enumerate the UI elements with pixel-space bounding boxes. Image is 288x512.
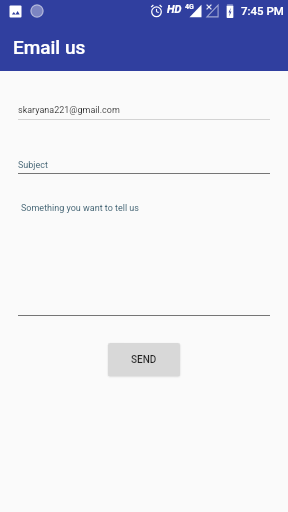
button[interactable]: Subject <box>18 152 270 174</box>
button[interactable]: skaryana221@gmail.com <box>18 97 270 120</box>
button[interactable]: Something you want to tell us <box>18 195 270 316</box>
staticText: HD <box>167 3 182 16</box>
button[interactable]: SEND <box>108 343 180 376</box>
staticText: 4G <box>185 3 194 11</box>
staticText: skaryana221@gmail.com <box>18 105 120 116</box>
staticText: 7:45 PM <box>241 4 284 17</box>
staticText: Email us <box>13 36 86 58</box>
staticText: SEND <box>131 354 157 366</box>
staticText: Something you want to tell us <box>21 203 139 214</box>
staticText: Subject <box>18 160 48 171</box>
